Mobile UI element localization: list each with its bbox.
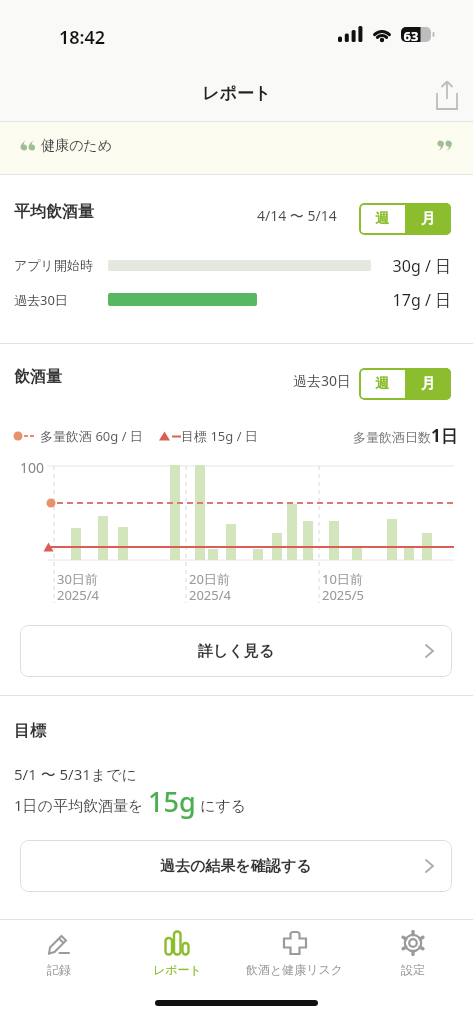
staticText: 過去30日 — [14, 291, 68, 309]
staticText: にする — [196, 795, 246, 815]
button[interactable]: 月 — [405, 368, 451, 400]
staticText: 30g / 日 — [367, 255, 451, 277]
button[interactable]: 過去の結果を確認する — [20, 840, 452, 892]
staticText: 2025/4 — [57, 586, 100, 604]
staticText: 63 — [401, 27, 421, 45]
staticText: 4/14 〜 5/14 — [257, 206, 337, 225]
staticText: 目標 15g / 日 — [181, 427, 258, 445]
staticText: 設定 — [401, 962, 425, 977]
staticText: 2025/5 — [322, 586, 365, 604]
staticText: 20日前 — [189, 570, 230, 588]
staticText: 月 — [421, 210, 435, 228]
staticText: 17g / 日 — [367, 289, 451, 311]
staticText: レポート — [153, 962, 202, 977]
staticText: 週 — [375, 375, 389, 393]
staticText: 平均飲酒量 — [14, 202, 94, 222]
staticText: 100 — [20, 458, 45, 477]
button[interactable]: レポート — [118, 929, 236, 989]
button[interactable]: 飲酒と健康リスク — [236, 929, 354, 989]
button[interactable] — [430, 76, 466, 116]
button[interactable]: 設定 — [354, 929, 472, 989]
staticText: 飲酒と健康リスク — [246, 962, 344, 977]
button[interactable]: 月 — [405, 203, 451, 235]
staticText: 飲酒量 — [14, 367, 62, 387]
staticText: 記録 — [47, 962, 71, 977]
staticText: 1日の平均飲酒量を — [14, 795, 148, 815]
button[interactable]: 記録 — [0, 929, 118, 989]
staticText: 健康のため — [41, 137, 112, 155]
button[interactable]: 週 — [359, 368, 405, 400]
staticText: レポート — [0, 83, 473, 104]
button[interactable]: 詳しく見る — [20, 625, 452, 677]
staticText: 15g — [148, 783, 196, 820]
staticText: アプリ開始時 — [14, 257, 93, 273]
staticText: 1日 — [431, 424, 458, 447]
staticText: 目標 — [14, 721, 46, 741]
staticText: 10日前 — [322, 570, 363, 588]
staticText: 18:42 — [59, 25, 106, 50]
staticText: 多量飲酒日数 — [353, 429, 431, 445]
button[interactable]: 週 — [359, 203, 405, 235]
staticText: 30日前 — [57, 570, 98, 588]
staticText: 過去30日 — [293, 371, 352, 390]
staticText: 過去の結果を確認する — [160, 857, 312, 876]
staticText: 2025/4 — [189, 586, 232, 604]
staticText: 多量飲酒 60g / 日 — [40, 427, 143, 445]
staticText: 週 — [375, 210, 389, 228]
staticText: 月 — [421, 375, 435, 393]
button[interactable]: 健康のため — [0, 122, 473, 175]
staticText: 詳しく見る — [198, 642, 275, 661]
staticText: 5/1 〜 5/31までに — [14, 764, 137, 784]
